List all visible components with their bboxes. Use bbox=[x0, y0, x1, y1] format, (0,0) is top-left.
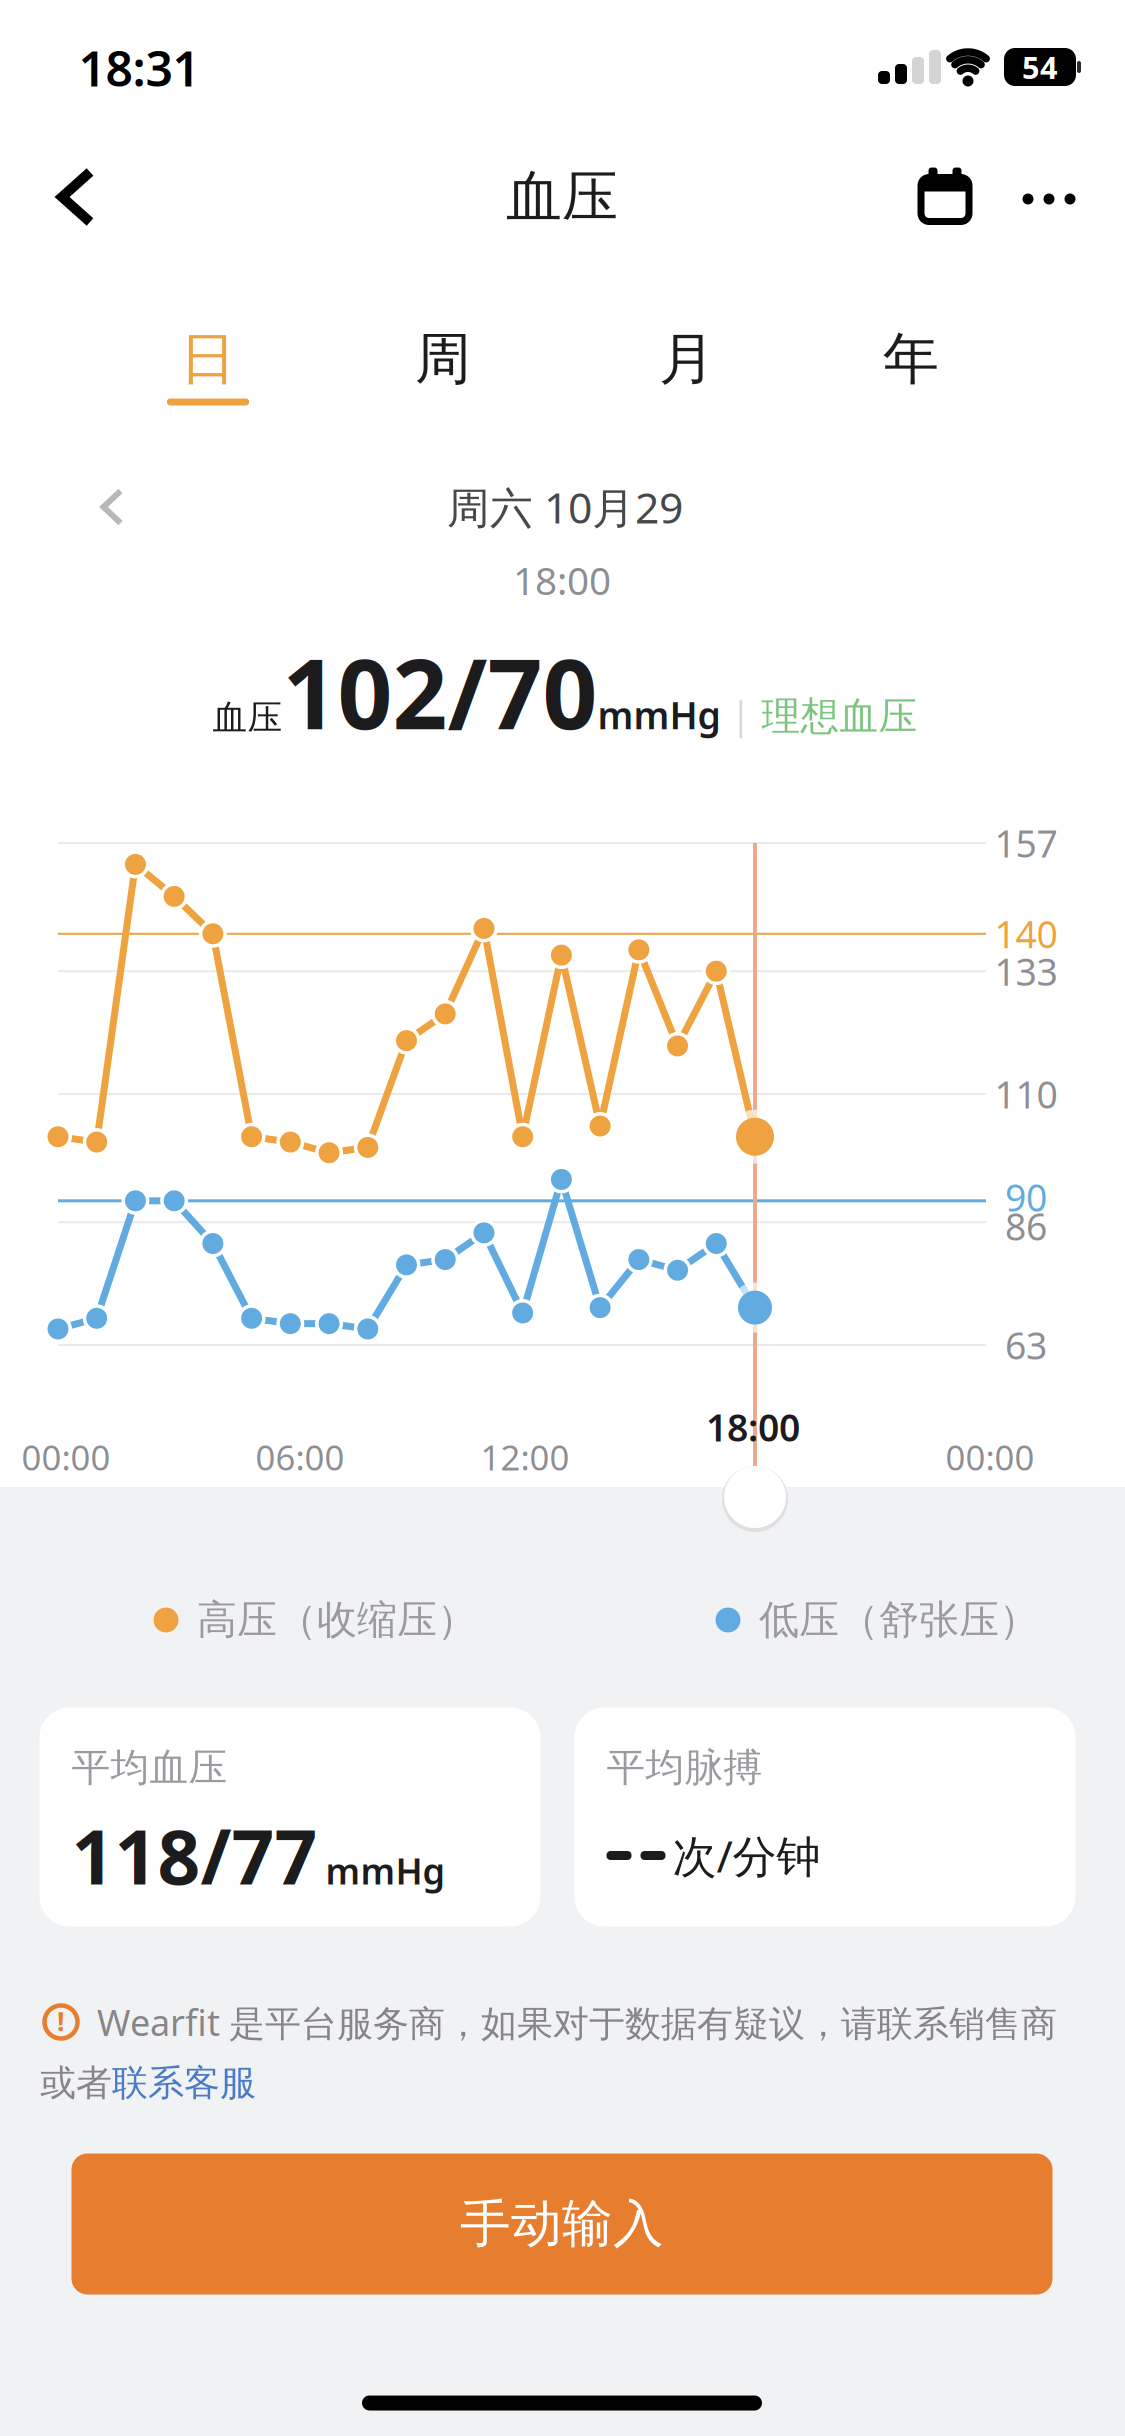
staticText: 00:00 bbox=[21, 1434, 110, 1480]
staticText: 63 bbox=[1005, 1320, 1047, 1370]
staticText: Wearfit 是平台服务商，如果对于数据有疑议，请联系销售商 bbox=[97, 1998, 1057, 2046]
staticText: 联系客服 bbox=[112, 2061, 256, 2105]
button[interactable]: 手动输入 bbox=[71, 2153, 1052, 2294]
staticText: 周六 10月29 bbox=[447, 479, 683, 535]
staticText: 周 bbox=[415, 325, 471, 393]
button[interactable]: 日历 bbox=[907, 157, 983, 236]
staticText: 血压 bbox=[212, 696, 282, 739]
staticText: 133 bbox=[994, 946, 1057, 996]
button[interactable]: 日 bbox=[140, 309, 276, 409]
staticText: mmHg bbox=[325, 1847, 445, 1894]
staticText: 次/分钟 bbox=[672, 1826, 820, 1885]
staticText: 157 bbox=[994, 818, 1057, 868]
staticText: 90 bbox=[1005, 1172, 1047, 1222]
staticText: 高压（收缩压） bbox=[197, 1595, 477, 1644]
staticText: 18:31 bbox=[78, 36, 199, 100]
staticText: 理想血压 bbox=[761, 693, 917, 740]
staticText: ! bbox=[57, 2003, 65, 2039]
staticText: 年 bbox=[883, 325, 939, 393]
staticText: mmHg bbox=[597, 690, 720, 740]
staticText: 00:00 bbox=[945, 1434, 1034, 1480]
staticText: 54 bbox=[1022, 47, 1058, 87]
staticText: 06:00 bbox=[255, 1434, 344, 1480]
staticText: 月 bbox=[659, 325, 715, 393]
staticText: 日 bbox=[180, 325, 236, 393]
staticText: 18:00 bbox=[513, 554, 611, 606]
staticText: 手动输入 bbox=[460, 2193, 664, 2255]
button[interactable]: 联系客服 bbox=[112, 2061, 256, 2105]
staticText: 102/70 bbox=[282, 628, 597, 756]
button[interactable]: 周 bbox=[375, 309, 511, 409]
staticText: 86 bbox=[1005, 1201, 1047, 1251]
staticText: 18:00 bbox=[706, 1402, 800, 1452]
button[interactable]: 返回 bbox=[32, 152, 120, 242]
staticText: 118/77 bbox=[71, 1806, 317, 1905]
staticText: 血压 bbox=[506, 163, 618, 231]
button[interactable]: 年 bbox=[843, 309, 979, 409]
staticText: 平均脉搏 bbox=[606, 1744, 762, 1791]
staticText: | bbox=[720, 690, 761, 740]
staticText: 12:00 bbox=[480, 1434, 569, 1480]
staticText: 平均血压 bbox=[71, 1744, 227, 1791]
staticText: 140 bbox=[994, 909, 1057, 959]
button[interactable]: 前一天 bbox=[83, 471, 140, 543]
staticText: 低压（舒张压） bbox=[759, 1595, 1039, 1644]
button[interactable]: 月 bbox=[619, 309, 755, 409]
staticText: 或者 bbox=[40, 2061, 112, 2105]
staticText: 110 bbox=[994, 1069, 1057, 1119]
button[interactable]: 更多 bbox=[1008, 179, 1089, 218]
